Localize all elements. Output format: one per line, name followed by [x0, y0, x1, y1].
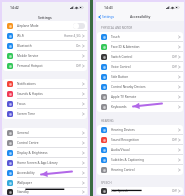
staticText: Hearing Devices: [111, 128, 135, 132]
button[interactable]: Touch: [97, 32, 183, 42]
button[interactable]: Notifications: [3, 79, 87, 89]
button[interactable]: Subtitles & Captioning: [97, 155, 183, 165]
button[interactable]: Personal Hotspot: [3, 61, 87, 71]
button[interactable]: Airplane Mode toggle: [73, 23, 85, 29]
button[interactable]: Audio/Visual: [97, 145, 183, 155]
staticText: Subtitles & Captioning: [111, 158, 144, 162]
staticText: Control Centre: [17, 141, 39, 145]
staticText: HEARING: [101, 119, 114, 123]
button[interactable]: Keyboards: [97, 102, 183, 112]
button[interactable]: Control Centre: [3, 138, 87, 148]
button[interactable]: Bluetooth: [3, 41, 87, 51]
button[interactable]: Home Screen & App Library: [3, 158, 87, 168]
staticText: Home 4_5G: [64, 34, 81, 38]
button[interactable]: Settings: [98, 15, 114, 19]
staticText: Standby: [17, 190, 29, 194]
staticText: Off: [172, 55, 177, 59]
button[interactable]: Wallpaper: [3, 178, 87, 188]
staticText: Notifications: [17, 82, 36, 86]
staticText: Mobile Service: [17, 54, 39, 58]
button[interactable]: Standby: [3, 188, 87, 195]
staticText: Off: [172, 189, 177, 193]
staticText: Personal Hotspot: [17, 64, 43, 68]
button[interactable]: Airplane Mode: [3, 21, 87, 31]
button[interactable]: Display & Brightness: [3, 148, 87, 158]
button[interactable]: Switch Control: [97, 52, 183, 62]
staticText: Screen Time: [17, 112, 36, 116]
button[interactable]: Live Speech: [97, 187, 183, 195]
staticText: Display & Brightness: [17, 151, 48, 155]
button[interactable]: Wi-Fi: [3, 31, 87, 41]
button[interactable]: Face ID & Attention: [97, 42, 183, 52]
button[interactable]: Hearing Devices: [97, 125, 183, 135]
staticText: Wi-Fi: [17, 34, 25, 38]
staticText: Touch: [111, 35, 120, 39]
staticText: On: [76, 44, 81, 48]
staticText: Settings: [102, 15, 114, 19]
button[interactable]: Hearing Control: [97, 165, 183, 175]
staticText: SPEECH: [101, 181, 112, 185]
button[interactable]: Side Button: [97, 72, 183, 82]
staticText: 14:43: [104, 5, 113, 10]
button[interactable]: Apple TV Remote: [97, 92, 183, 102]
staticText: General: [17, 131, 29, 135]
button[interactable]: General: [3, 128, 87, 138]
staticText: Accessibility: [130, 14, 151, 19]
staticText: Voice Control: [111, 65, 131, 69]
button[interactable]: Voice Control: [97, 62, 183, 72]
staticText: Off: [172, 138, 177, 142]
staticText: Live Speech: [111, 189, 129, 193]
button[interactable]: Sounds & Haptics: [3, 89, 87, 99]
staticText: Off: [76, 64, 81, 68]
button[interactable]: Control Nearby Devices: [97, 82, 183, 92]
staticText: Focus: [17, 102, 26, 106]
staticText: Airplane Mode: [17, 24, 39, 28]
staticText: Hearing Control: [111, 168, 135, 172]
staticText: Bluetooth: [17, 44, 32, 48]
button[interactable]: Accessibility: [3, 168, 87, 178]
staticText: PHYSICAL AND MOTOR: [101, 26, 133, 30]
staticText: Keyboards: [111, 105, 127, 109]
staticText: Wallpaper: [17, 181, 32, 185]
staticText: Face ID & Attention: [111, 45, 140, 49]
staticText: Side Button: [111, 75, 129, 79]
staticText: Switch Control: [111, 55, 133, 59]
staticText: Audio/Visual: [111, 148, 130, 152]
button[interactable]: Mobile Service: [3, 51, 87, 61]
button[interactable]: Sound Recognition: [97, 135, 183, 145]
staticText: Apple TV Remote: [111, 95, 137, 99]
button[interactable]: Screen Time: [3, 109, 87, 119]
staticText: Off: [172, 65, 177, 69]
staticText: Home Screen & App Library: [17, 161, 58, 165]
staticText: 14:42: [10, 5, 19, 10]
staticText: Accessibility: [17, 171, 35, 175]
staticText: Sound Recognition: [111, 138, 139, 142]
staticText: Settings: [38, 15, 52, 20]
staticText: Sounds & Haptics: [17, 92, 43, 96]
button[interactable]: Focus: [3, 99, 87, 109]
staticText: Control Nearby Devices: [111, 85, 146, 89]
